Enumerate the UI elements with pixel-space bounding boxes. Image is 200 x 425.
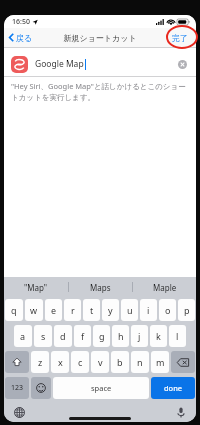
button[interactable]: Backspace — [171, 351, 195, 373]
button[interactable]: Google Map — [4, 52, 196, 76]
button[interactable]: r — [64, 299, 81, 321]
button[interactable]: o — [159, 299, 176, 321]
staticText: i — [147, 304, 150, 316]
staticText: m — [156, 356, 165, 368]
staticText: space — [91, 383, 112, 393]
button[interactable]: done — [151, 377, 195, 399]
button[interactable]: Change keyboard language — [12, 405, 26, 419]
staticText: "Map" — [24, 282, 48, 293]
staticText: a — [20, 330, 26, 342]
staticText: k — [156, 330, 161, 342]
button[interactable]: h — [112, 325, 129, 347]
staticText: 新規ショートカット — [63, 33, 137, 43]
button[interactable]: w — [25, 299, 43, 321]
staticText: v — [98, 356, 103, 368]
staticText: q — [11, 304, 17, 316]
staticText: 123 — [11, 383, 24, 393]
button[interactable]: a — [14, 325, 32, 347]
button[interactable]: Shift — [5, 351, 29, 373]
button[interactable]: b — [111, 351, 129, 373]
button[interactable]: k — [150, 325, 167, 347]
button[interactable]: Dictate — [174, 405, 188, 419]
button[interactable]: 123 — [5, 377, 29, 399]
staticText: p — [184, 304, 190, 316]
staticText: t — [90, 304, 94, 316]
button[interactable]: Maps — [69, 277, 132, 297]
staticText: o — [165, 304, 171, 316]
staticText: done — [164, 383, 183, 393]
staticText: r — [71, 304, 75, 316]
button[interactable]: 完了 — [164, 28, 196, 47]
staticText: w — [30, 304, 38, 316]
staticText: u — [127, 304, 133, 316]
button[interactable]: c — [71, 351, 89, 373]
button[interactable]: g — [93, 325, 110, 347]
button[interactable]: u — [121, 299, 138, 321]
button[interactable]: p — [178, 299, 195, 321]
staticText: Google Map — [35, 58, 84, 70]
button[interactable]: n — [131, 351, 149, 373]
staticText: 16:50 — [12, 17, 30, 27]
button[interactable]: v — [91, 351, 109, 373]
staticText: j — [138, 330, 141, 342]
staticText: "Hey Siri、Google Map"と話しかけるとこのショートカットを実行… — [11, 81, 189, 102]
staticText: d — [60, 330, 66, 342]
staticText: f — [81, 330, 85, 342]
button[interactable]: space — [53, 377, 149, 399]
staticText: Maple — [153, 282, 177, 293]
staticText: h — [118, 330, 124, 342]
staticText: 完了 — [172, 33, 188, 43]
staticText: c — [78, 356, 83, 368]
staticText: g — [99, 330, 105, 342]
staticText: Maps — [90, 282, 111, 293]
button[interactable]: y — [102, 299, 119, 321]
staticText: b — [117, 356, 123, 368]
staticText: 戻る — [16, 33, 33, 43]
button[interactable]: Clear text — [175, 57, 189, 71]
button[interactable]: i — [140, 299, 157, 321]
button[interactable]: q — [5, 299, 23, 321]
button[interactable]: Maple — [133, 277, 196, 297]
staticText: n — [137, 356, 143, 368]
button[interactable]: d — [54, 325, 72, 347]
button[interactable]: e — [45, 299, 62, 321]
staticText: l — [176, 330, 179, 342]
staticText: y — [108, 304, 113, 316]
button[interactable]: m — [151, 351, 169, 373]
button[interactable]: l — [169, 325, 186, 347]
button[interactable]: j — [131, 325, 148, 347]
button[interactable]: x — [51, 351, 69, 373]
button[interactable]: s — [34, 325, 52, 347]
staticText: z — [38, 356, 43, 368]
button[interactable]: Emoji — [31, 377, 51, 399]
staticText: s — [41, 330, 46, 342]
button[interactable]: "Map" — [4, 277, 68, 297]
button[interactable]: f — [74, 325, 91, 347]
staticText: x — [58, 356, 63, 368]
button[interactable]: t — [83, 299, 100, 321]
staticText: e — [51, 304, 57, 316]
button[interactable]: 戻る — [4, 28, 39, 47]
button[interactable]: z — [31, 351, 49, 373]
